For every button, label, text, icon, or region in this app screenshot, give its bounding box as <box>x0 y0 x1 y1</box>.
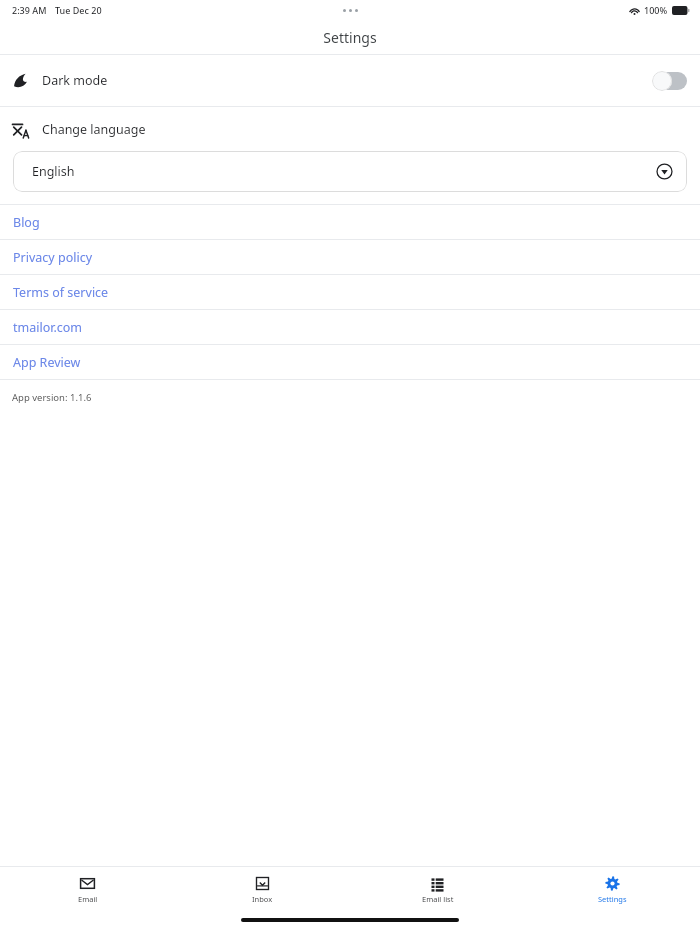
button[interactable]: Change language <box>0 107 700 151</box>
staticText: English <box>32 163 75 180</box>
staticText: 2:39 AM <box>12 4 47 16</box>
button[interactable]: English <box>13 151 687 192</box>
staticText: Change language <box>42 121 146 138</box>
staticText: Dark mode <box>42 72 108 89</box>
button[interactable]: Dark mode <box>0 55 700 106</box>
staticText: Settings <box>598 894 627 904</box>
button[interactable]: Dark mode toggle <box>652 71 688 91</box>
button[interactable]: Email list <box>350 876 525 904</box>
other: Open language list <box>656 163 673 180</box>
staticText: Tue Dec 20 <box>55 4 102 16</box>
staticText: Settings <box>323 28 377 47</box>
button[interactable]: App Review <box>0 345 700 379</box>
staticText: Terms of service <box>13 284 109 301</box>
staticText: App version: 1.1.6 <box>12 391 92 404</box>
button[interactable]: Inbox <box>175 876 350 904</box>
staticText: App Review <box>13 354 81 371</box>
button[interactable]: Privacy policy <box>0 240 700 274</box>
staticText: Email list <box>422 894 454 904</box>
staticText: Privacy policy <box>13 249 93 266</box>
staticText: Email <box>78 894 98 904</box>
button[interactable]: Email <box>0 876 175 904</box>
button[interactable]: tmailor.com <box>0 310 700 344</box>
staticText: Blog <box>13 214 40 231</box>
button[interactable]: Blog <box>0 205 700 239</box>
staticText: 100% <box>644 4 668 16</box>
button[interactable]: Terms of service <box>0 275 700 309</box>
button[interactable]: Settings <box>525 876 700 904</box>
staticText: tmailor.com <box>13 319 82 336</box>
staticText: Inbox <box>252 894 273 904</box>
